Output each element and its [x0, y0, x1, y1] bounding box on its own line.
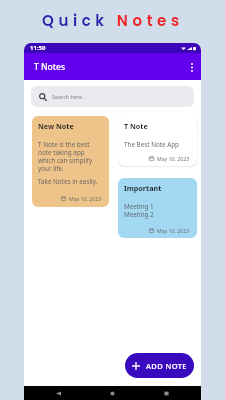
staticText: note taking app: [38, 149, 85, 157]
staticText: T Notes: [34, 61, 66, 73]
staticText: Meeting 2: [124, 211, 154, 219]
staticText: 11:50: [30, 44, 46, 52]
staticText: The Best Note App: [124, 141, 179, 149]
staticText: May 10, 2023: [157, 227, 190, 234]
button[interactable]: T Note: [118, 116, 197, 166]
staticText: Take Notes in easily.: [38, 178, 98, 186]
staticText: which can simplify: [38, 157, 93, 165]
staticText: Quick Notes: [42, 10, 184, 31]
staticText: May 10, 2023: [69, 195, 102, 202]
staticText: Search here..: [52, 93, 85, 100]
staticText: T Note: [124, 123, 148, 131]
staticText: Important: [124, 185, 162, 193]
staticText: New Note: [38, 123, 74, 131]
button[interactable]: Search here..: [31, 86, 194, 107]
staticText: your life.: [38, 165, 64, 173]
button[interactable]: ADD NOTE: [125, 353, 194, 378]
staticText: Meeting 1: [124, 203, 154, 211]
staticText: May 10, 2023: [157, 155, 190, 162]
button[interactable]: More options: [185, 60, 199, 74]
button[interactable]: New Note: [32, 116, 109, 207]
button[interactable]: Important: [118, 178, 197, 238]
staticText: ADD NOTE: [146, 361, 187, 371]
button[interactable]: Home: [110, 391, 115, 396]
button[interactable]: Recents: [164, 391, 169, 396]
staticText: T Note is the best: [38, 141, 90, 149]
button[interactable]: Back: [56, 391, 61, 396]
